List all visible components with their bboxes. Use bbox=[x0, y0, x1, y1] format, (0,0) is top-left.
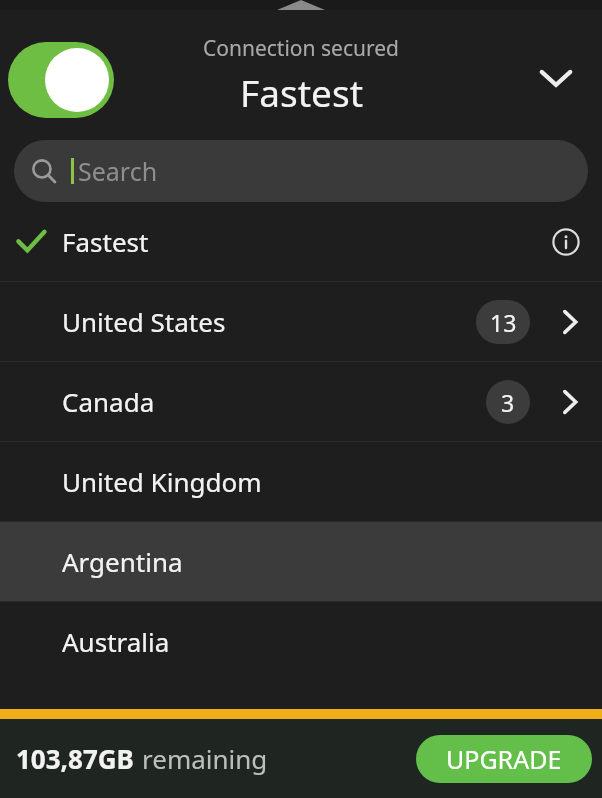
button[interactable]: Fastest bbox=[0, 202, 602, 281]
button[interactable]: Search bbox=[14, 140, 588, 202]
staticText: Search bbox=[78, 154, 158, 188]
staticText: Fastest bbox=[240, 67, 363, 117]
staticText: Fastest bbox=[62, 224, 149, 259]
button[interactable]: UPGRADE bbox=[416, 735, 592, 783]
staticText: 103,87GB bbox=[16, 741, 134, 776]
staticText: remaining bbox=[142, 741, 268, 776]
button[interactable]: Argentina bbox=[0, 522, 602, 601]
button[interactable]: Info bbox=[544, 220, 588, 264]
button[interactable]: Collapse bbox=[526, 48, 586, 108]
staticText: Argentina bbox=[62, 544, 183, 579]
button[interactable]: Connection secured bbox=[203, 34, 399, 117]
staticText: United States bbox=[62, 304, 226, 339]
button[interactable]: Australia bbox=[0, 602, 602, 681]
staticText: 3 bbox=[501, 387, 515, 418]
button[interactable]: United States bbox=[0, 282, 602, 361]
button[interactable]: VPN toggle, on bbox=[8, 42, 114, 118]
staticText: 13 bbox=[490, 307, 517, 338]
staticText: United Kingdom bbox=[62, 464, 262, 499]
staticText: Australia bbox=[62, 624, 170, 659]
button[interactable]: United Kingdom bbox=[0, 442, 602, 521]
staticText: Connection secured bbox=[203, 34, 399, 63]
staticText: Canada bbox=[62, 384, 155, 419]
staticText: UPGRADE bbox=[446, 742, 562, 776]
button[interactable]: Canada bbox=[0, 362, 602, 441]
